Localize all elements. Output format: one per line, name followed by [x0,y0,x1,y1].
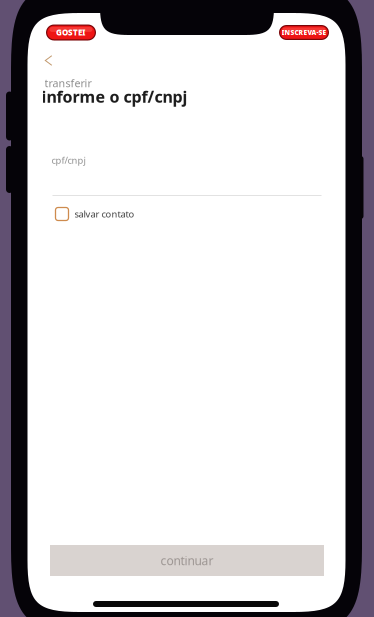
button[interactable]: INSCREVA-SE [279,25,329,40]
staticText: cpf/cnpj [51,154,85,166]
button[interactable]: continuar [50,545,324,576]
button[interactable]: GOSTEI [46,24,96,40]
staticText: transferir [44,76,91,90]
staticText: informe o cpf/cnpj [41,86,187,107]
staticText: salvar contato [74,208,134,220]
button[interactable]: salvar contato [55,206,185,222]
staticText: INSCREVA-SE [281,28,326,37]
staticText: GOSTEI [56,27,86,38]
button[interactable]: Back [37,49,71,73]
staticText: continuar [160,552,213,568]
